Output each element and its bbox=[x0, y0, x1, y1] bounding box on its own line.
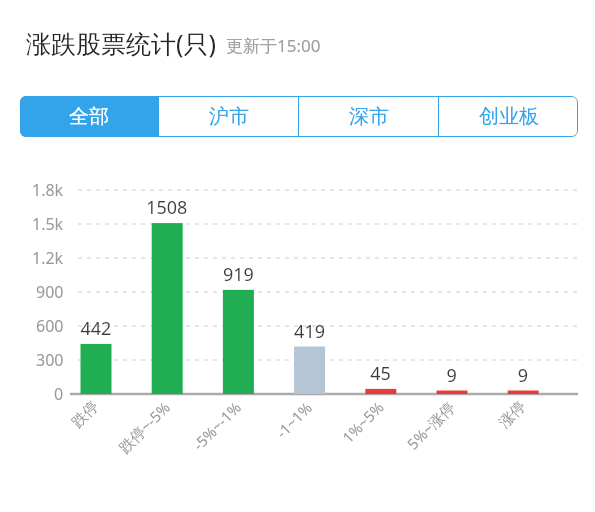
staticText: 沪市 bbox=[209, 104, 249, 129]
staticText: 深市 bbox=[349, 104, 389, 129]
button[interactable]: 沪市 bbox=[159, 96, 298, 137]
button[interactable]: 创业板 bbox=[439, 96, 578, 137]
staticText: 全部 bbox=[69, 104, 109, 129]
staticText: 创业板 bbox=[479, 104, 539, 129]
button[interactable]: 深市 bbox=[299, 96, 438, 137]
button[interactable]: 全部 bbox=[20, 96, 158, 137]
staticText: 更新于15:00 bbox=[226, 34, 321, 57]
staticText: 涨跌股票统计(只) bbox=[26, 26, 217, 60]
